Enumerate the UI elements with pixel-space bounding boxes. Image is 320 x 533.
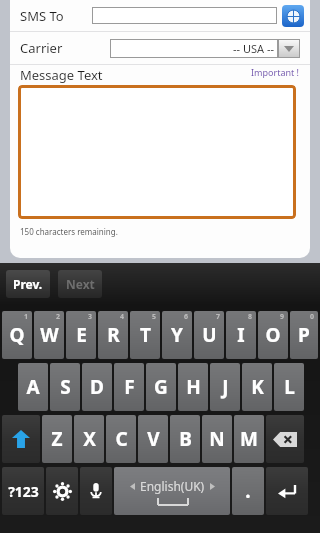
button[interactable]: N [202,415,232,463]
staticText: 0 [310,312,315,322]
button[interactable]: Y [162,311,192,359]
staticText: D [90,374,104,400]
staticText: 1 [24,312,29,322]
staticText: 8 [248,312,253,322]
button[interactable]: Pick contact [282,5,304,27]
button[interactable]: Voice input [80,467,112,515]
staticText: Q [9,322,25,348]
staticText: 150 characters remaining. [20,226,118,237]
button[interactable]: S [50,363,80,411]
staticText: I [237,322,245,348]
staticText: E [76,322,87,348]
button[interactable]: Prev. [6,270,50,298]
staticText: U [202,322,217,348]
button[interactable]: ?123 [2,467,44,515]
button[interactable]: . [232,467,264,515]
staticText: A [26,374,40,400]
button[interactable]: E [66,311,96,359]
button[interactable]: U [194,311,224,359]
button[interactable]: C [106,415,136,463]
staticText: English(UK) [140,478,205,494]
staticText: 7 [216,312,221,322]
staticText: M [240,426,258,452]
staticText: -- USA -- [233,41,274,56]
staticText: 5 [152,312,157,322]
staticText: 6 [184,312,189,322]
staticText: Prev. [13,276,43,292]
button[interactable]: Q [2,311,32,359]
staticText: Z [51,426,63,452]
staticText: B [179,426,192,452]
staticText: N [209,426,225,452]
button[interactable]: V [138,415,168,463]
button[interactable]: A [18,363,48,411]
button[interactable]: L [274,363,304,411]
staticText: G [154,374,168,400]
button[interactable]: Space, English (UK) [114,467,230,515]
button[interactable]: F [114,363,144,411]
button[interactable]: Carrier [10,32,310,64]
staticText: Y [171,322,183,348]
button[interactable] [18,85,296,219]
button[interactable]: O [258,311,288,359]
button[interactable]: W [34,311,64,359]
staticText: ?123 [8,482,39,501]
staticText: W [40,322,59,348]
staticText: T [140,322,151,348]
staticText: P [298,322,310,348]
staticText: J [222,374,229,400]
staticText: F [124,374,135,400]
button[interactable]: T [130,311,160,359]
staticText: Carrier [20,39,110,57]
button[interactable]: -- USA -- [110,39,300,58]
button[interactable]: B [170,415,200,463]
staticText: S [60,374,71,400]
button[interactable]: Shift [2,415,40,463]
staticText: C [115,426,128,452]
button[interactable]: Next [58,270,102,298]
staticText: H [186,374,201,400]
button[interactable]: SMS To [10,0,310,31]
button[interactable]: Settings [46,467,78,515]
staticText: 3 [88,312,93,322]
staticText: Important ! [251,66,300,78]
staticText: 9 [280,312,285,322]
staticText: 2 [56,312,61,322]
button[interactable]: R [98,311,128,359]
staticText: SMS To [20,7,92,25]
staticText: K [251,374,264,400]
button[interactable]: M [234,415,264,463]
button[interactable]: Enter [266,467,308,515]
staticText: X [83,426,96,452]
button[interactable]: X [74,415,104,463]
staticText: V [147,426,160,452]
staticText: O [265,322,281,348]
staticText: 4 [120,312,125,322]
staticText: . [245,478,251,504]
button[interactable]: H [178,363,208,411]
button[interactable]: G [146,363,176,411]
button[interactable]: Z [42,415,72,463]
button[interactable]: J [210,363,240,411]
button[interactable]: Backspace [266,415,304,463]
staticText: R [107,322,120,348]
staticText: Message Text [20,66,103,84]
button[interactable]: P [290,311,318,359]
staticText: L [284,374,295,400]
button[interactable]: I [226,311,256,359]
button[interactable]: K [242,363,272,411]
staticText: Next [66,276,95,292]
button[interactable]: D [82,363,112,411]
